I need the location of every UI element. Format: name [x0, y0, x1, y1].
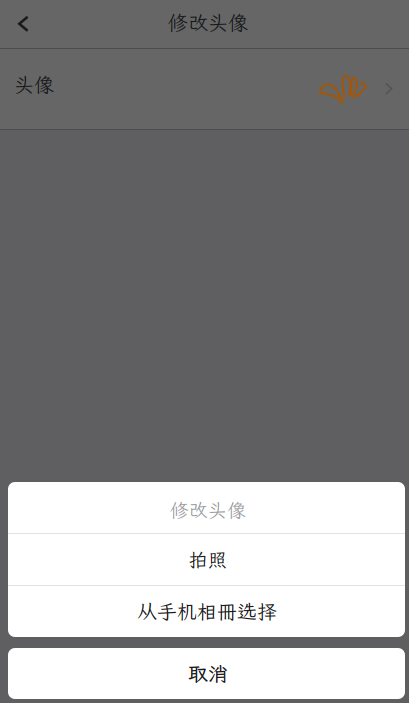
- staticText: 修改头像: [168, 9, 248, 36]
- button[interactable]: 从手机相册选择: [8, 586, 405, 637]
- button[interactable]: 取消: [8, 648, 405, 699]
- staticText: 从手机相册选择: [137, 598, 277, 624]
- staticText: 取消: [188, 660, 228, 687]
- button[interactable]: 修改头像: [8, 482, 405, 533]
- button[interactable]: 拍照: [8, 534, 405, 585]
- button[interactable]: Back: [0, 0, 48, 48]
- staticText: 修改头像: [170, 498, 246, 522]
- button[interactable]: 头像: [0, 49, 409, 129]
- staticText: 头像: [14, 71, 54, 98]
- staticText: 拍照: [189, 547, 227, 572]
